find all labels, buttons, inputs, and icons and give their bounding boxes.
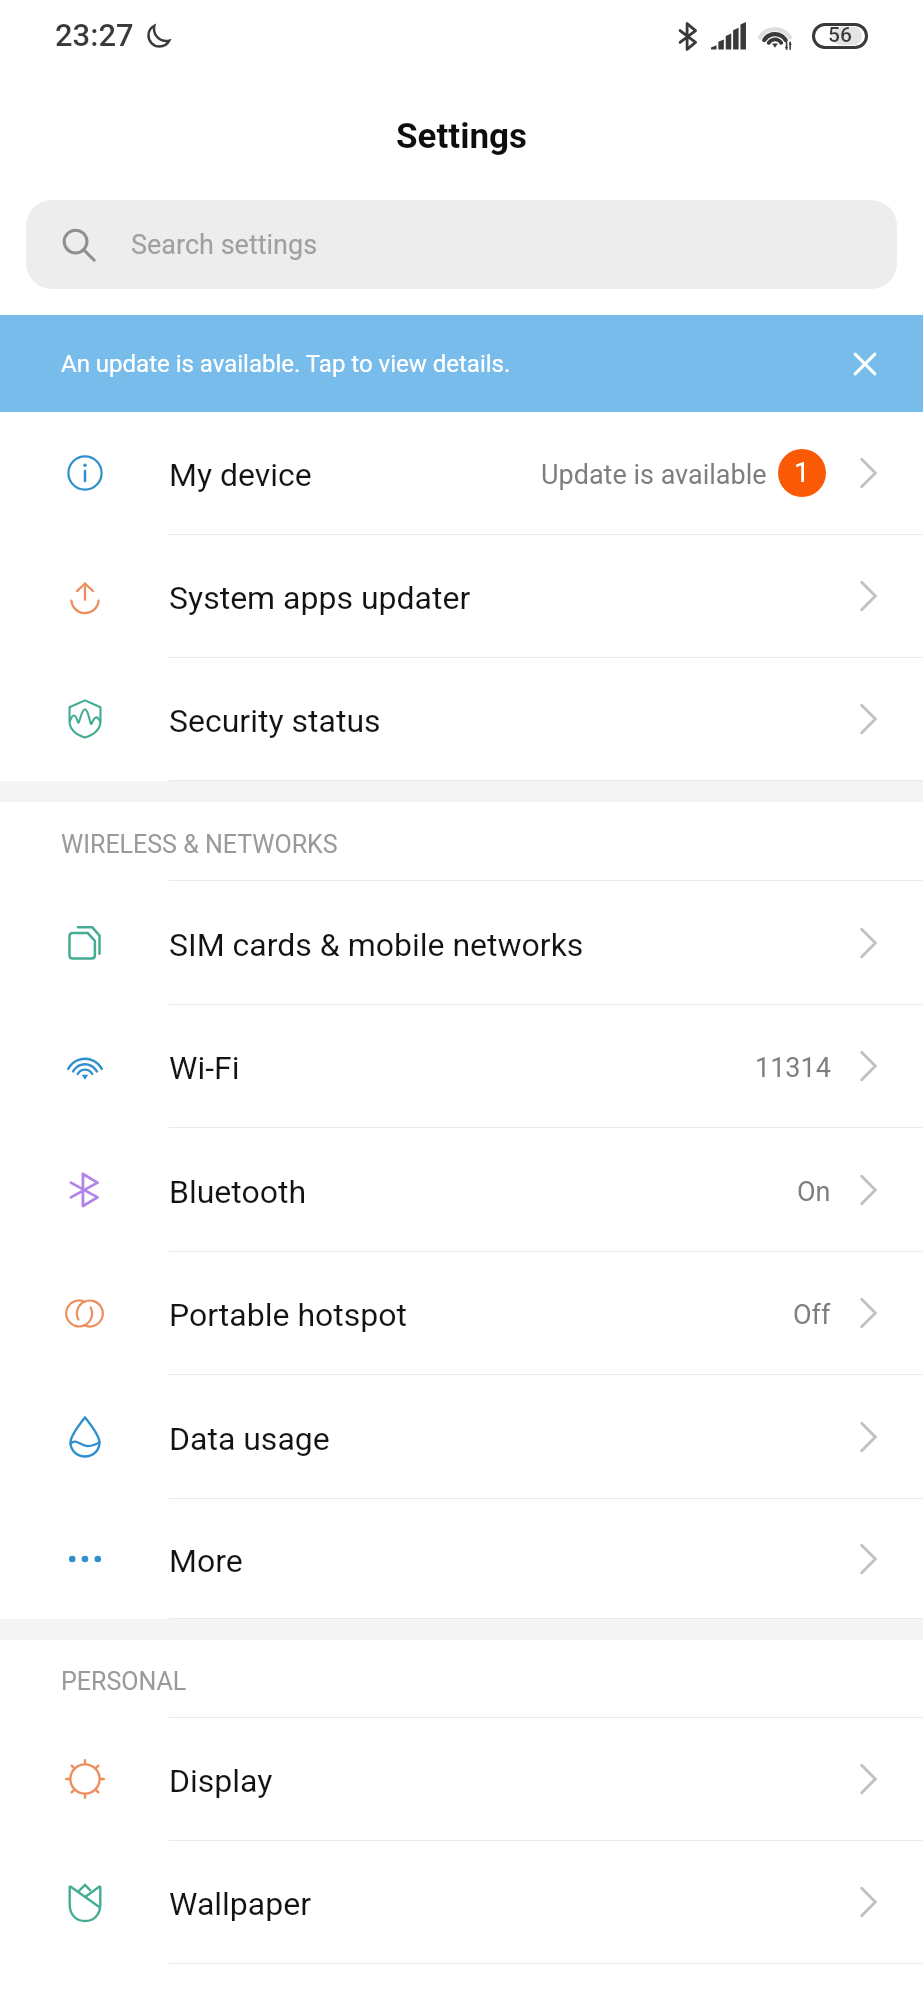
staticText: 23:27 [55, 17, 134, 53]
staticText: Settings [396, 116, 527, 157]
staticText: Wallpaper [169, 1885, 311, 1923]
staticText: 56 [828, 23, 852, 48]
staticText: SIM cards & mobile networks [169, 926, 584, 964]
staticText: Search settings [131, 229, 318, 261]
button[interactable]: Wi-Fi [0, 1005, 923, 1128]
button[interactable]: System apps updater [0, 535, 923, 658]
button[interactable]: Dismiss update banner [843, 342, 887, 386]
staticText: Off [793, 1299, 831, 1331]
staticText: Wi-Fi [169, 1049, 240, 1087]
button[interactable]: SIM cards & mobile networks [0, 881, 923, 1005]
staticText: An update is available. Tap to view deta… [61, 350, 511, 378]
staticText: 1 [794, 456, 810, 489]
button[interactable]: Search settings [26, 200, 897, 289]
staticText: Data usage [169, 1420, 330, 1458]
staticText: PERSONAL [61, 1667, 187, 1696]
staticText: Security status [169, 702, 381, 740]
staticText: System apps updater [169, 579, 471, 617]
staticText: WIRELESS & NETWORKS [61, 830, 338, 859]
staticText: Bluetooth [169, 1173, 307, 1211]
staticText: On [797, 1176, 831, 1208]
button[interactable]: My device [0, 412, 923, 535]
staticText: Display [169, 1762, 273, 1800]
button[interactable]: More [0, 1499, 923, 1619]
button[interactable]: Bluetooth [0, 1128, 923, 1252]
button[interactable]: Wallpaper [0, 1841, 923, 1964]
button[interactable]: Data usage [0, 1375, 923, 1499]
button[interactable]: Display [0, 1718, 923, 1841]
button[interactable]: An update is available. Tap to view deta… [0, 315, 923, 412]
staticText: More [169, 1542, 243, 1580]
staticText: Portable hotspot [169, 1296, 407, 1334]
staticText: My device [169, 456, 312, 494]
button[interactable]: Security status [0, 658, 923, 781]
staticText: 11314 [755, 1052, 831, 1084]
staticText: Update is available [541, 459, 767, 491]
button[interactable]: Portable hotspot [0, 1252, 923, 1375]
